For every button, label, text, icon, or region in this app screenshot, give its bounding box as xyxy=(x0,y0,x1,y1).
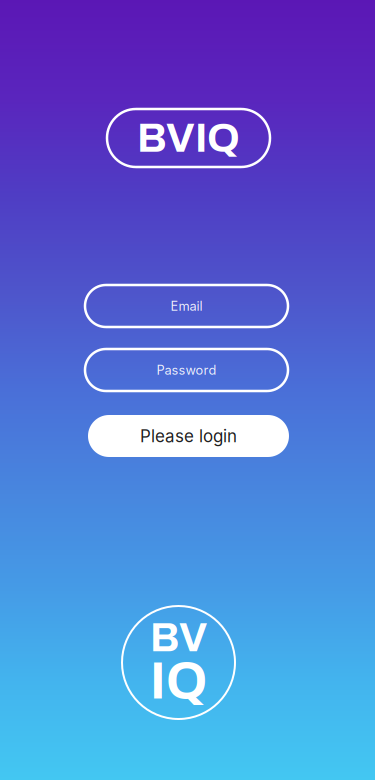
staticText: BV xyxy=(150,615,207,660)
staticText: Please login xyxy=(140,426,237,446)
staticText: Email xyxy=(170,298,202,314)
button[interactable]: Please login xyxy=(88,415,289,457)
button[interactable]: Email xyxy=(85,285,288,327)
staticText: Password xyxy=(156,362,216,378)
staticText: BVIQ xyxy=(137,115,240,160)
button[interactable]: Password xyxy=(85,349,288,391)
staticText: IQ xyxy=(150,653,207,709)
